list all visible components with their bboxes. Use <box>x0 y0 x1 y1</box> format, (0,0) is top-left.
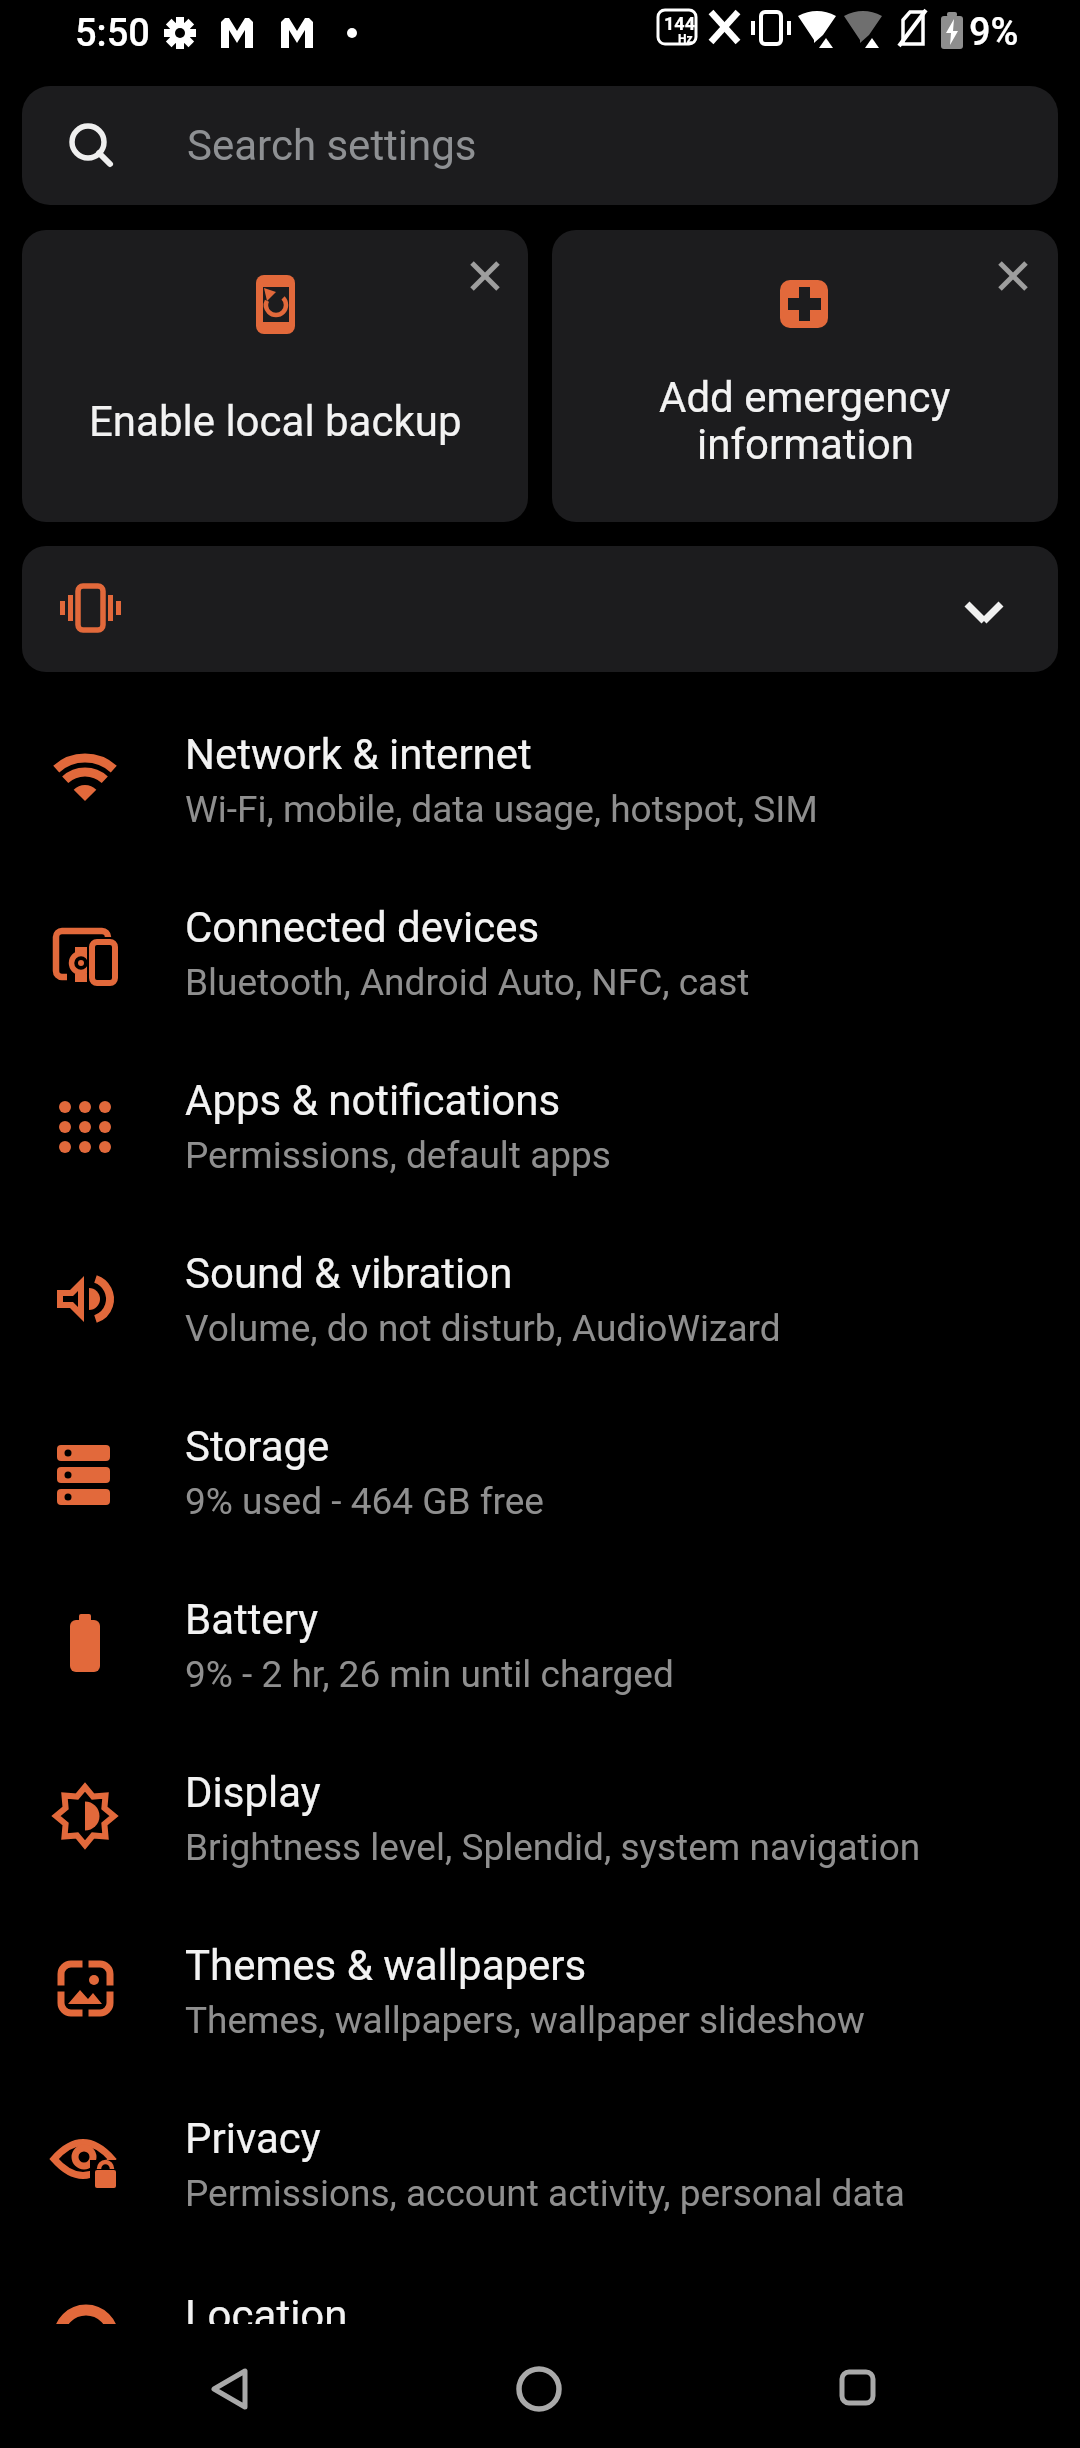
staticText: 9% <box>969 10 1019 55</box>
button[interactable] <box>22 546 1058 672</box>
staticText: Permissions, default apps <box>185 1134 611 1177</box>
staticText: Enable local backup <box>89 397 462 446</box>
staticText: Themes, wallpapers, wallpaper slideshow <box>185 1999 865 2042</box>
button[interactable] <box>0 1385 1080 1558</box>
staticText: Volume, do not disturb, AudioWizard <box>185 1307 781 1350</box>
staticText: 144 <box>664 13 695 34</box>
button[interactable] <box>0 1212 1080 1385</box>
button[interactable] <box>0 866 1080 1039</box>
staticText: Add emergency <box>659 373 951 422</box>
staticText: Hz <box>678 32 693 46</box>
staticText: Bluetooth, Android Auto, NFC, cast <box>185 961 750 1004</box>
button[interactable] <box>0 693 1080 866</box>
staticText: 5:50 <box>75 11 150 56</box>
staticText: Display <box>185 1768 321 1817</box>
staticText: Sound & vibration <box>185 1249 513 1298</box>
staticText: Privacy <box>185 2114 321 2163</box>
button[interactable] <box>0 1039 1080 1212</box>
button[interactable]: Add emergency <box>552 230 1058 522</box>
staticText: Search settings <box>187 121 477 170</box>
button[interactable] <box>0 2250 1080 2423</box>
button[interactable] <box>479 2329 599 2444</box>
button[interactable] <box>790 2329 910 2444</box>
staticText: Permissions, account activity, personal … <box>185 2172 905 2215</box>
staticText: 9% used - 464 GB free <box>185 1480 544 1523</box>
button[interactable]: Search settings <box>22 86 1058 205</box>
button[interactable] <box>0 1731 1080 1904</box>
staticText: 9% - 2 hr, 26 min until charged <box>185 1653 674 1696</box>
staticText: Apps & notifications <box>185 1076 561 1125</box>
button[interactable] <box>0 1558 1080 1731</box>
button[interactable] <box>169 2329 289 2444</box>
button[interactable] <box>0 1904 1080 2077</box>
button[interactable]: Enable local backup <box>22 230 528 522</box>
staticText: Brightness level, Splendid, system navig… <box>185 1826 921 1869</box>
button[interactable] <box>0 2077 1080 2250</box>
staticText: information <box>697 420 914 469</box>
staticText: Network & internet <box>185 730 532 779</box>
staticText: Connected devices <box>185 903 540 952</box>
staticText: Storage <box>185 1422 330 1471</box>
staticText: Battery <box>185 1595 319 1644</box>
staticText: Themes & wallpapers <box>185 1941 587 1990</box>
staticText: Location <box>185 2291 348 2324</box>
staticText: Wi-Fi, mobile, data usage, hotspot, SIM <box>185 788 818 831</box>
